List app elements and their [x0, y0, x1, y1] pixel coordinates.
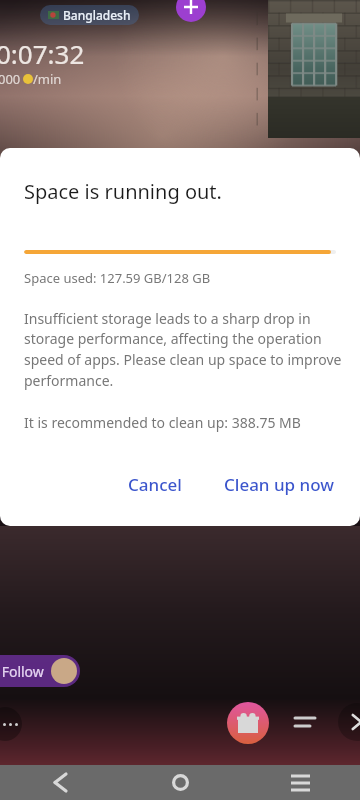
staticText: Space is running out.: [24, 178, 222, 205]
button[interactable]: Video thumbnail: [268, 0, 360, 138]
button[interactable]: Comments: [0, 707, 22, 741]
button[interactable]: + Follow: [0, 655, 80, 687]
button[interactable]: Back: [0, 765, 120, 800]
button[interactable]: Recent apps: [240, 765, 360, 800]
staticText: Clean up now: [224, 473, 334, 496]
button[interactable]: Menu: [288, 705, 322, 739]
button[interactable]: Clean up now: [214, 465, 344, 504]
button[interactable]: Home: [120, 765, 240, 800]
button[interactable]: Cancel: [112, 465, 198, 504]
button[interactable]: Next: [338, 703, 360, 741]
button[interactable]: Bangladesh: [40, 5, 139, 25]
staticText: Cancel: [128, 473, 182, 496]
button[interactable]: Send gift: [227, 702, 269, 744]
staticText: It is recommended to clean up: 388.75 MB: [24, 413, 301, 432]
staticText: /min: [33, 70, 62, 88]
staticText: 000: [0, 70, 21, 88]
staticText: + Follow: [0, 662, 44, 681]
staticText: 0:07:32: [0, 36, 85, 71]
button[interactable]: Add: [176, 0, 206, 22]
staticText: Bangladesh: [63, 7, 131, 23]
staticText: Insufficient storage leads to a sharp dr…: [24, 309, 342, 391]
staticText: Space used: 127.59 GB/128 GB: [24, 269, 211, 287]
